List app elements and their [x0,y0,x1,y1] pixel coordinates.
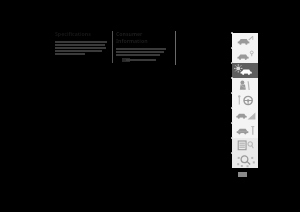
staticText: Consumer Information [116,30,166,44]
button[interactable]: Specifications [232,138,258,153]
button[interactable]: Seats and safety [232,78,258,93]
button[interactable]: Maintenance [232,123,258,138]
button[interactable]: Index [232,153,258,168]
button[interactable]: Keys and doors [232,48,258,63]
staticText: Specifications [55,30,91,37]
button[interactable]: Emergency and towing [232,33,258,48]
button[interactable]: Loading and towing [232,108,258,123]
button[interactable]: Lights and controls [232,63,258,78]
button[interactable]: Driving [232,93,258,108]
